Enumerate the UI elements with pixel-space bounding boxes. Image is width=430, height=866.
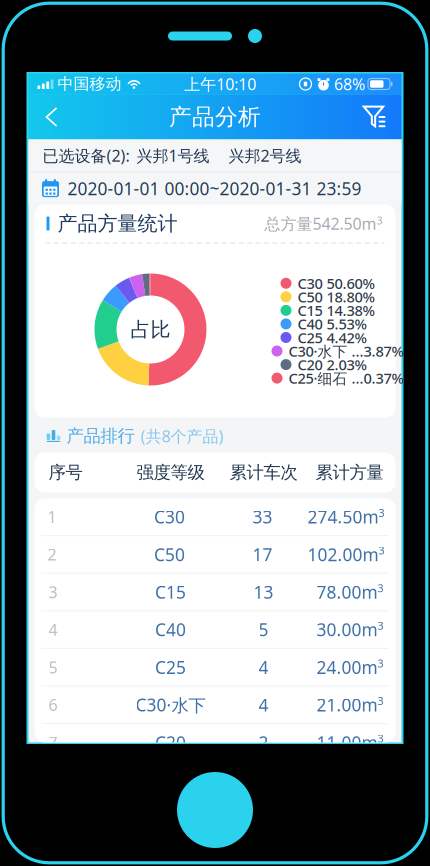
staticText: 13 [253,580,273,603]
staticText: 总方量542.50m [264,213,376,234]
staticText: 3 [378,543,384,558]
staticText: 2 [258,731,268,754]
staticText: C15 [155,580,186,603]
staticText: 274.50m [307,505,378,528]
staticText: 3 [377,731,383,746]
button[interactable]: 2 [34,536,395,573]
staticText: 3 [377,581,383,595]
staticText: C30 [154,505,185,528]
staticText: 强度等级 [136,462,204,483]
staticText: 中国移动 [57,74,121,94]
staticText: 68% [334,73,365,95]
staticText: 2 [47,544,56,565]
staticText: 7 [48,732,57,753]
staticText: C40 [155,618,186,641]
staticText: C30·水下 ...3.87% [288,341,403,361]
button[interactable]: 2020-01-01 00:00~2020-01-31 23:59 [28,172,401,204]
staticText: C25·细石 ...0.37% [288,368,403,388]
staticText: C15 14.38% [297,301,374,320]
staticText: 产品排行 [66,425,134,447]
button[interactable]: Back [28,94,74,139]
staticText: 33 [252,505,272,528]
staticText: 78.00m [316,580,377,603]
staticText: 4 [258,693,268,716]
staticText: C50 [154,543,185,566]
staticText: C30·水下 [135,693,205,716]
staticText: C25 4.42% [297,328,366,347]
staticText: 6 [48,694,57,715]
button[interactable]: Filter [351,94,401,139]
staticText: 30.00m [316,618,377,641]
staticText: C50 18.80% [297,287,374,307]
button[interactable]: Home [177,772,253,848]
staticText: 已选设备(2): [42,145,129,166]
staticText: 产品分析 [169,103,261,131]
button[interactable]: 1 [34,498,395,535]
staticText: C20 2.03% [297,355,366,374]
staticText: C30 50.60% [297,273,374,293]
staticText: (共8个产品) [140,425,223,447]
staticText: C20 [155,731,186,754]
button[interactable]: 7 [34,724,395,761]
button[interactable]: 3 [34,574,395,610]
staticText: 上午10:10 [184,73,256,95]
staticText: 3 [377,694,383,708]
button[interactable]: 6 [34,686,395,723]
staticText: 4 [48,619,57,640]
staticText: 3 [376,213,382,228]
staticText: 24.00m [316,656,377,679]
staticText: C25 [155,656,186,679]
staticText: 序号 [48,462,82,483]
staticText: 21.00m [316,693,377,716]
staticText: 3 [377,656,383,670]
staticText: 5 [48,657,57,678]
staticText: 3 [48,581,57,603]
staticText: 3 [377,619,383,633]
staticText: 5 [258,618,268,641]
staticText: 累计车次 [229,462,297,483]
staticText: 产品方量统计 [57,211,177,236]
staticText: 4 [258,656,268,679]
staticText: 兴邦1号线 [136,145,209,166]
staticText: 3 [378,506,384,520]
staticText: 累计方量 [315,462,383,483]
staticText: 11.00m [316,731,377,754]
button[interactable]: 4 [34,611,395,648]
staticText: 102.00m [307,543,378,566]
staticText: 占比 [130,317,170,342]
staticText: 2020-01-01 00:00~2020-01-31 23:59 [67,177,361,200]
button[interactable]: 5 [34,649,395,685]
staticText: 1 [47,506,56,527]
staticText: 兴邦2号线 [228,145,301,166]
staticText: 17 [252,543,272,566]
staticText: C40 5.53% [297,314,366,334]
